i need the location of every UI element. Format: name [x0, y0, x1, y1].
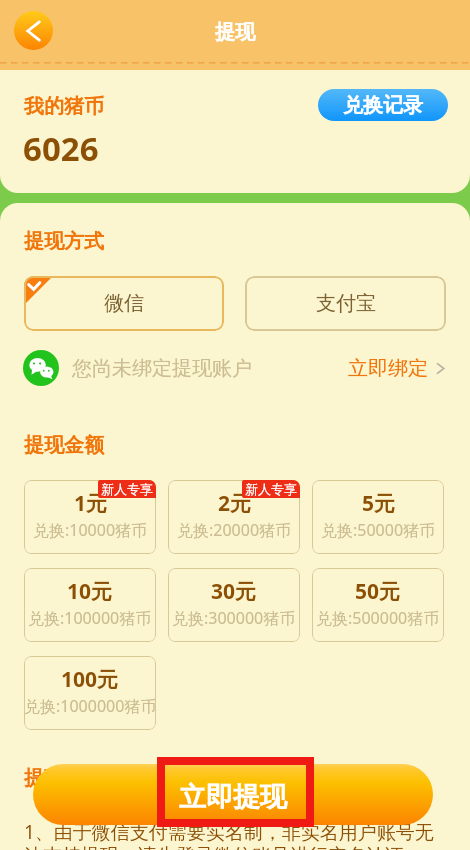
staticText: 30元	[211, 577, 257, 606]
staticText: 立即绑定	[348, 356, 428, 381]
staticText: 6026	[23, 126, 99, 171]
button[interactable]: 30元	[168, 568, 300, 642]
staticText: 新人专享	[245, 481, 297, 497]
button[interactable]: 100元	[24, 656, 156, 730]
staticText: 兑换:1000000猪币	[24, 695, 156, 717]
button[interactable]: 10元	[24, 568, 156, 642]
staticText: 100元	[61, 665, 119, 694]
button[interactable]: 您尚未绑定提现账户	[23, 348, 446, 388]
button[interactable]: 支付宝	[245, 276, 446, 331]
staticText: 微信	[104, 291, 144, 316]
button[interactable]: 50元	[312, 568, 444, 642]
staticText: 支付宝	[316, 291, 376, 316]
staticText: 10元	[67, 577, 113, 606]
staticText: 兑换:500000猪币	[316, 607, 440, 629]
button[interactable]: 5元	[312, 480, 444, 554]
staticText: 兑换:10000猪币	[33, 519, 148, 541]
staticText: 2元	[218, 489, 252, 518]
staticText: 1元	[74, 489, 108, 518]
staticText: 您尚未绑定提现账户	[72, 356, 252, 381]
staticText: 50元	[355, 577, 401, 606]
staticText: 兑换:300000猪币	[172, 607, 296, 629]
button[interactable]: 微信	[24, 276, 224, 331]
button[interactable]: 立即提现	[33, 764, 433, 825]
staticText: 兑换:20000猪币	[177, 519, 292, 541]
staticText: 提现金额	[24, 433, 104, 458]
staticText: 1、由于微信支付需要实名制，非实名用户账号无法支持提现，请先登录微信账号进行实名…	[24, 819, 450, 850]
staticText: 提现说明	[24, 766, 104, 791]
staticText: 兑换记录	[343, 93, 423, 118]
button[interactable]: Back	[14, 11, 53, 50]
button[interactable]: 兑换记录	[318, 89, 448, 121]
staticText: 立即提现	[179, 780, 287, 814]
staticText: 新人专享	[101, 481, 153, 497]
staticText: 兑换:100000猪币	[28, 607, 152, 629]
button[interactable]: 1元	[24, 480, 156, 554]
button[interactable]: 2元	[168, 480, 300, 554]
staticText: 兑换:50000猪币	[321, 519, 436, 541]
staticText: 提现方式	[24, 229, 104, 254]
staticText: 我的猪币	[24, 94, 104, 119]
staticText: 提现	[215, 20, 255, 45]
staticText: 5元	[362, 489, 396, 518]
